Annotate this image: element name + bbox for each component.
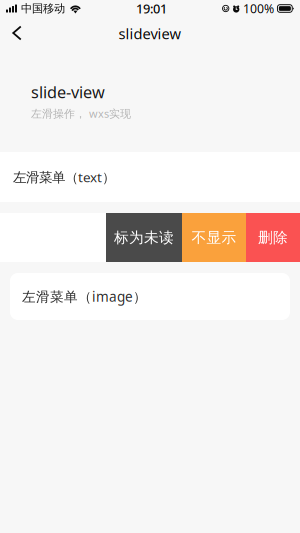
button[interactable]: Back (0, 17, 34, 49)
button[interactable]: 标为未读 (106, 213, 182, 262)
staticText: 删除 (258, 228, 288, 246)
staticText: 标为未读 (114, 228, 174, 246)
staticText: 100% (243, 0, 274, 17)
staticText: 19:01 (136, 0, 167, 17)
staticText: 左滑操作， wxs实现 (31, 106, 131, 121)
button[interactable]: 左滑菜单（image） (10, 273, 290, 320)
staticText: slideview (118, 24, 181, 43)
button[interactable]: 删除 (246, 213, 300, 262)
button[interactable]: 不显示 (182, 213, 246, 262)
staticText: 左滑菜单（image） (22, 287, 147, 306)
staticText: slide-view (31, 81, 105, 103)
staticText: 不显示 (191, 228, 236, 246)
button[interactable]: 左滑菜单（text） (0, 152, 300, 202)
staticText: 左滑菜单（text） (13, 168, 115, 186)
staticText: 中国移动 (21, 2, 65, 15)
